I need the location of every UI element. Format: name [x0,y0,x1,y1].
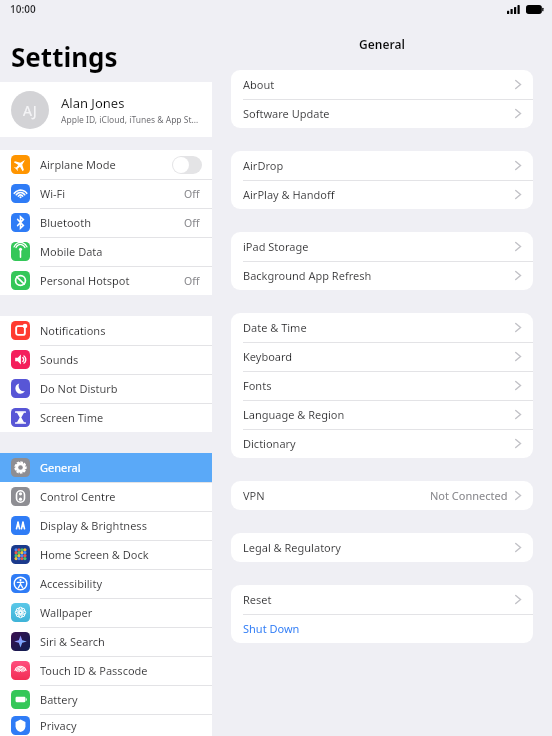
staticText: Mobile Data [40,244,212,259]
staticText: General [359,36,405,52]
button[interactable]: Privacy [0,714,212,736]
button[interactable]: Do Not Disturb [0,374,212,403]
staticText: Alan Jones [61,94,125,112]
staticText: Bluetooth [40,215,184,230]
staticText: Off [184,187,200,201]
staticText: Reset [243,592,272,607]
staticText: Display & Brightness [40,518,212,533]
button[interactable]: Wallpaper [0,598,212,627]
button[interactable]: Airplane Mode [0,150,212,179]
button[interactable]: Wi-Fi [0,179,212,208]
button[interactable]: AirPlay & Handoff [231,180,533,209]
button[interactable]: Background App Refresh [231,261,533,290]
staticText: Screen Time [40,410,212,425]
button[interactable]: Dictionary [231,429,533,458]
staticText: Airplane Mode [40,157,172,172]
staticText: Legal & Regulatory [243,540,341,555]
staticText: Battery [40,692,212,707]
staticText: Fonts [243,378,272,393]
staticText: Sounds [40,352,212,367]
button[interactable]: Date & Time [231,313,533,342]
button[interactable]: VPN [231,481,533,510]
staticText: Home Screen & Dock [40,547,212,562]
staticText: Software Update [243,106,330,121]
button[interactable]: Airplane Mode toggle, off [172,156,202,174]
staticText: Control Centre [40,489,212,504]
staticText: Privacy [40,718,212,733]
staticText: Personal Hotspot [40,273,184,288]
staticText: Date & Time [243,320,307,335]
button[interactable]: Legal & Regulatory [231,533,533,562]
staticText: Wallpaper [40,605,212,620]
staticText: Not Connected [430,488,508,503]
button[interactable]: Home Screen & Dock [0,540,212,569]
button[interactable]: Notifications [0,316,212,345]
staticText: General [40,460,212,475]
button[interactable]: Display & Brightness [0,511,212,540]
button[interactable]: Mobile Data [0,237,212,266]
staticText: Do Not Disturb [40,381,212,396]
button[interactable]: AirDrop [231,151,533,180]
button[interactable]: AJ [0,82,212,137]
staticText: Keyboard [243,349,293,364]
button[interactable]: Sounds [0,345,212,374]
staticText: Settings [11,39,118,74]
staticText: Apple ID, iCloud, iTunes & App St… [61,114,199,126]
button[interactable]: Keyboard [231,342,533,371]
button[interactable]: Control Centre [0,482,212,511]
button[interactable]: Touch ID & Passcode [0,656,212,685]
button[interactable]: Language & Region [231,400,533,429]
staticText: Touch ID & Passcode [40,663,212,678]
staticText: AirPlay & Handoff [243,187,335,202]
button[interactable]: About [231,70,533,99]
button[interactable]: Bluetooth [0,208,212,237]
button[interactable]: Accessibility [0,569,212,598]
staticText: Off [184,216,200,230]
staticText: Off [184,274,200,288]
staticText: Notifications [40,323,212,338]
button[interactable]: iPad Storage [231,232,533,261]
button[interactable]: Battery [0,685,212,714]
button[interactable]: Screen Time [0,403,212,432]
staticText: 10:00 [10,2,36,16]
staticText: AirDrop [243,158,284,173]
staticText: About [243,77,275,92]
staticText: VPN [243,488,265,503]
staticText: Language & Region [243,407,345,422]
button[interactable]: Personal Hotspot [0,266,212,295]
button[interactable]: Siri & Search [0,627,212,656]
staticText: Shut Down [243,621,300,636]
staticText: Accessibility [40,576,212,591]
button[interactable]: Fonts [231,371,533,400]
staticText: Siri & Search [40,634,212,649]
button[interactable]: Shut Down [231,614,533,643]
button[interactable]: General [0,453,212,482]
button[interactable]: Reset [231,585,533,614]
button[interactable]: Software Update [231,99,533,128]
staticText: Wi-Fi [40,186,184,201]
staticText: Dictionary [243,436,296,451]
staticText: AJ [23,101,37,120]
staticText: iPad Storage [243,239,309,254]
staticText: Background App Refresh [243,268,372,283]
